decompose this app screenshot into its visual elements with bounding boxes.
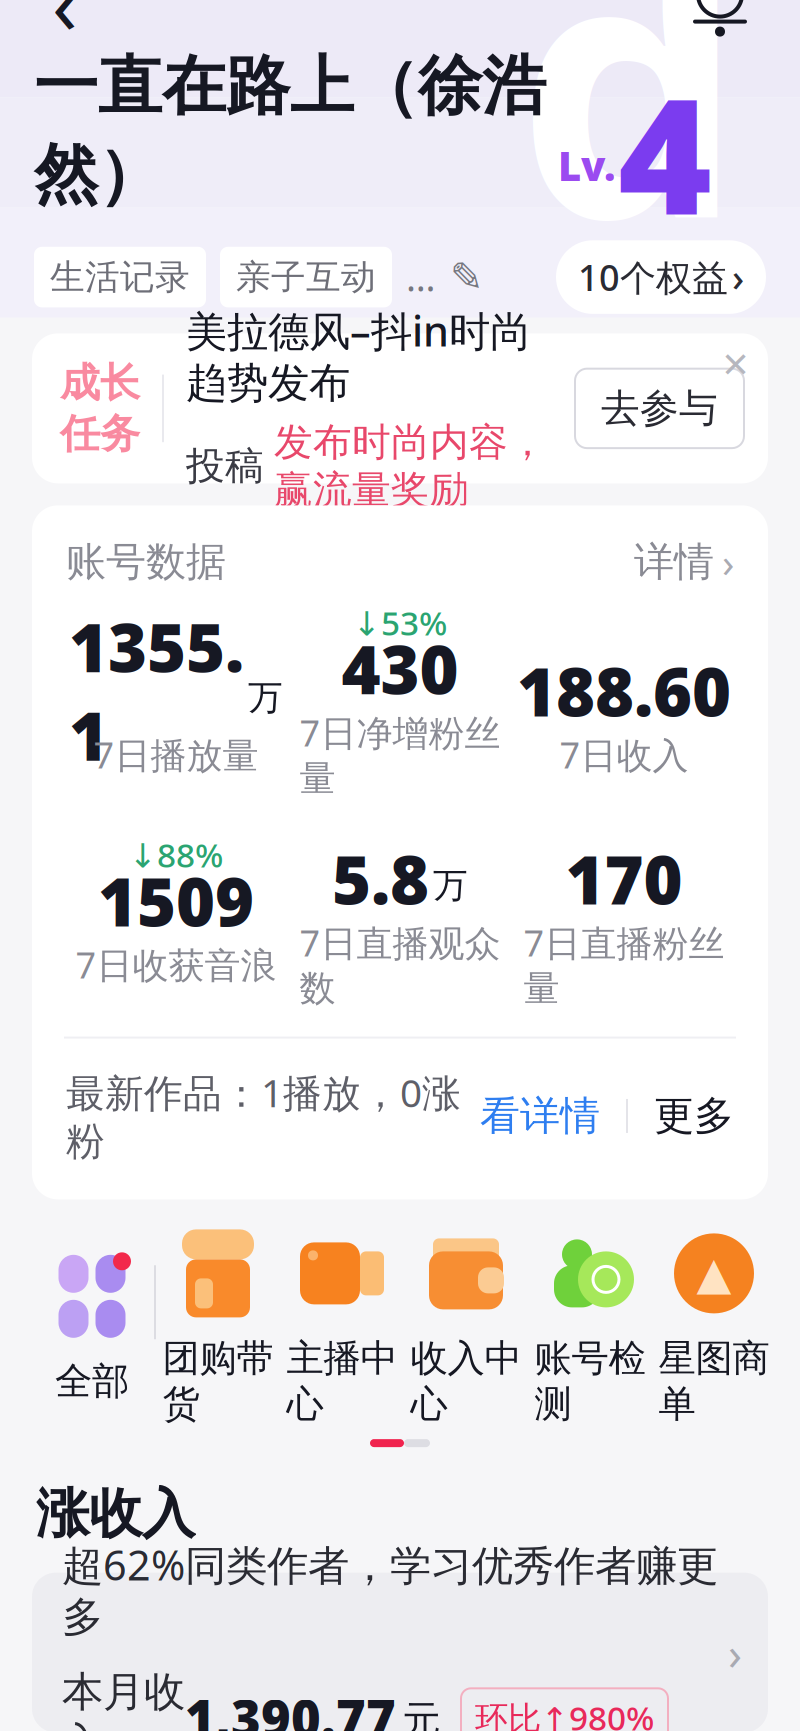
staticText: 生活记录 <box>50 256 190 298</box>
staticText: 7日收入 <box>559 731 688 778</box>
staticText: 全部 <box>55 1358 129 1404</box>
staticText: 超62%同类作者，学习优秀作者赚更多 <box>62 1537 718 1643</box>
button[interactable]: 超62%同类作者，学习优秀作者赚更多 <box>32 1573 768 1731</box>
staticText: 亲子互动 <box>236 256 376 298</box>
staticText: 5.8 <box>332 834 429 923</box>
button[interactable]: 详情 <box>634 535 734 588</box>
staticText: … <box>406 252 436 302</box>
staticText: 更多 <box>654 1091 734 1140</box>
staticText: 元 <box>402 1697 441 1731</box>
staticText: 4 <box>618 46 712 259</box>
staticText: 主播中心 <box>286 1335 397 1427</box>
staticText: 任务 <box>60 409 140 458</box>
staticText: 10个权益 <box>578 253 728 301</box>
staticText: 7日直播粉丝量 <box>523 918 724 1010</box>
staticText: 170 <box>565 834 682 923</box>
staticText: 1,390.77 <box>185 1684 396 1731</box>
staticText: 一直在路上（徐浩 <box>34 47 546 126</box>
button[interactable]: 看详情 <box>480 1091 600 1140</box>
staticText: 万 <box>248 676 283 719</box>
button[interactable]: Back <box>30 0 100 37</box>
staticText: 1509 <box>98 856 254 945</box>
staticText: 团购带货 <box>162 1335 273 1427</box>
button[interactable]: 账号检测 <box>528 1225 652 1427</box>
button[interactable]: ▲ <box>652 1225 776 1427</box>
staticText: 最新作品：1播放，0涨粉 <box>66 1067 461 1165</box>
staticText: 7日收获音浪 <box>75 941 276 988</box>
staticText: 然） <box>34 136 162 214</box>
staticText: › <box>722 535 734 588</box>
staticText: 账号数据 <box>66 537 226 586</box>
staticText: 成长 <box>60 358 140 407</box>
staticText: 本月收入： <box>62 1667 185 1731</box>
button[interactable]: Notifications <box>670 0 770 47</box>
staticText: › <box>728 1622 742 1683</box>
staticText: 环比↑980% <box>475 1695 654 1731</box>
staticText: 收入中心 <box>410 1335 521 1427</box>
staticText: 星图商单 <box>658 1335 769 1427</box>
button[interactable]: 全部 <box>30 1248 154 1404</box>
staticText: 430 <box>341 624 458 713</box>
staticText: 7日播放量 <box>93 731 258 778</box>
staticText: ‹ <box>52 0 78 57</box>
staticText: 涨收入 <box>36 1481 195 1547</box>
staticText: 美拉德风–抖in时尚趋势发布 <box>186 303 531 409</box>
staticText: ▲ <box>696 1248 731 1299</box>
staticText: 发布时尚内容，赢流量奖励 <box>274 419 547 514</box>
staticText: › <box>732 252 744 302</box>
staticText: d <box>516 0 744 316</box>
staticText: ✕ <box>721 345 750 385</box>
staticText: 看详情 <box>480 1091 600 1140</box>
button[interactable]: 成长 <box>32 333 768 483</box>
staticText: ↓53% <box>353 600 447 645</box>
staticText: ✎ <box>450 254 484 300</box>
staticText: 7日净增粉丝量 <box>299 708 500 800</box>
button[interactable]: 更多 <box>654 1091 734 1140</box>
staticText: 7日直播观众数 <box>299 918 500 1010</box>
staticText: 详情 <box>634 537 714 586</box>
staticText: 账号检测 <box>534 1335 645 1427</box>
staticText: 1355.1 <box>69 602 244 779</box>
button[interactable]: 主播中心 <box>280 1225 404 1427</box>
staticText: ↓88% <box>129 832 223 877</box>
button[interactable]: 10个权益 <box>556 240 766 314</box>
button[interactable]: 收入中心 <box>404 1225 528 1427</box>
staticText: 去参与 <box>601 385 718 432</box>
staticText: 188.60 <box>517 646 731 735</box>
staticText: 万 <box>433 864 468 907</box>
staticText: Lv. <box>558 139 616 192</box>
staticText: 投稿 <box>186 442 264 490</box>
button[interactable]: 团购带货 <box>156 1225 280 1427</box>
